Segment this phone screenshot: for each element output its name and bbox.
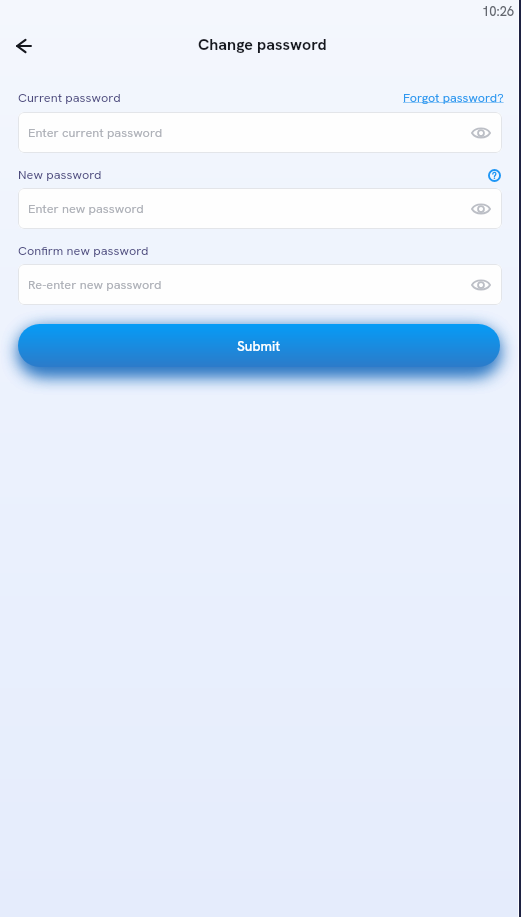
staticText: Enter current password [28,124,163,141]
button[interactable]: Show password [471,199,491,219]
staticText: Submit [237,337,281,355]
staticText: Confirm new password [18,242,149,259]
staticText: 10:26 [482,3,515,20]
button[interactable]: Back [10,32,38,60]
staticText: Enter new password [28,200,144,217]
button[interactable]: Enter current password [18,112,502,153]
button[interactable]: Show password [471,123,491,143]
button[interactable]: Show password [471,275,491,295]
button[interactable]: Submit [18,324,500,367]
button[interactable]: Forgot password? [403,89,504,105]
staticText: Current password [18,89,121,106]
button[interactable]: Re-enter new password [18,264,502,305]
staticText: Re-enter new password [28,276,162,293]
staticText: New password [18,166,102,183]
button[interactable]: Enter new password [18,188,502,229]
staticText: Change password [198,34,327,55]
button[interactable]: Help [487,168,501,182]
